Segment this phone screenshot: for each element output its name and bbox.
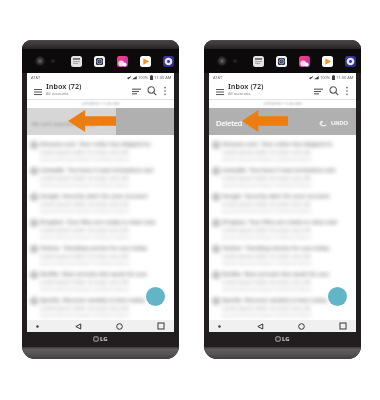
staticText: LG (100, 335, 108, 343)
staticText: 11:00 AM (154, 75, 172, 80)
staticText: UPDATED 11:46 AM (81, 101, 120, 107)
button[interactable]: Netflix New arrivals this week for you (209, 265, 356, 291)
button[interactable]: Search (145, 84, 159, 98)
button[interactable]: Pinterest Ideas we picked just for you (27, 317, 174, 332)
staticText: Netflix New arrivals this week for you (40, 270, 147, 278)
button[interactable]: Spotify Discover weekly is here today (27, 291, 174, 317)
button[interactable]: Amazon.com Your order has shipped to (27, 135, 174, 161)
button[interactable]: Recent apps (155, 320, 167, 332)
staticText: Dropbox Your files are ready to view now (222, 218, 338, 226)
staticText: Google Security alert for your account (222, 192, 330, 200)
button[interactable]: Home (113, 320, 125, 332)
staticText: Lorem ipsum dolor sit amet cons elit (40, 330, 129, 337)
button[interactable]: Back (254, 320, 266, 332)
staticText: Netflix New arrivals this week for you (222, 270, 329, 278)
button[interactable]: Navigation menu (213, 85, 226, 98)
staticText: Twitter Trending stories for you today (40, 244, 148, 252)
staticText: Spotify Discover weekly is here today (40, 296, 146, 304)
button[interactable]: Navigation menu (31, 85, 44, 98)
button[interactable]: Twitter Trending stories for you today (27, 239, 174, 265)
button[interactable]: More options (159, 85, 171, 97)
button[interactable]: Twitter Trending stories for you today (209, 239, 356, 265)
button[interactable]: Compose message (328, 287, 347, 306)
button[interactable]: Google Security alert for your account (209, 187, 356, 213)
button[interactable]: Back (72, 320, 84, 332)
button[interactable]: Notifications (32, 321, 42, 331)
staticText: We can't read this email yet (32, 121, 97, 128)
staticText: AT&T (213, 75, 223, 80)
staticText: Pinterest Ideas we picked just for you (222, 322, 329, 330)
staticText: 11:00 AM (336, 75, 354, 80)
staticText: Amazon.com Your order has shipped to (40, 140, 151, 148)
staticText: Inbox (72) (46, 81, 82, 91)
button[interactable]: Notifications (214, 321, 224, 331)
button[interactable]: Dropbox Your files are ready to view now (27, 213, 174, 239)
staticText: 100% (138, 75, 149, 80)
button[interactable]: Netflix New arrivals this week for you (27, 265, 174, 291)
button[interactable]: Dropbox Your files are ready to view now (209, 213, 356, 239)
button[interactable]: Amazon.com Your order has shipped to (209, 135, 356, 161)
button[interactable]: Search (327, 84, 341, 98)
staticText: 100% (320, 75, 331, 80)
button[interactable]: LinkedIn You have 4 new invitations wai (27, 161, 174, 187)
staticText: Inbox (72) (228, 81, 264, 91)
button[interactable]: Recent apps (337, 320, 349, 332)
staticText: LinkedIn You have 4 new invitations wai (222, 166, 336, 174)
staticText: All accounts (228, 91, 251, 96)
staticText: Spotify Discover weekly is here today (222, 296, 328, 304)
button[interactable]: Sort (129, 84, 143, 98)
button[interactable]: LinkedIn You have 4 new invitations wai (209, 161, 356, 187)
button[interactable]: Compose message (146, 287, 165, 306)
staticText: UNDO (331, 119, 348, 127)
staticText: Google Security alert for your account (40, 192, 148, 200)
staticText: Dropbox Your files are ready to view now (40, 218, 156, 226)
staticText: LinkedIn You have 4 new invitations wai (40, 166, 154, 174)
staticText: AT&T (31, 75, 41, 80)
staticText: Lorem ipsum dolor sit amet cons elit (222, 330, 311, 337)
staticText: Amazon.com Your order has shipped to (222, 140, 333, 148)
staticText: Twitter Trending stories for you today (222, 244, 330, 252)
button[interactable]: Google Security alert for your account (27, 187, 174, 213)
staticText: Pinterest Ideas we picked just for you (40, 322, 147, 330)
button[interactable]: Spotify Discover weekly is here today (209, 291, 356, 317)
staticText: LG (282, 335, 290, 343)
button[interactable]: Sort (311, 84, 325, 98)
staticText: Deleted (216, 118, 243, 128)
button[interactable]: More options (341, 85, 353, 97)
button[interactable]: Pinterest Ideas we picked just for you (209, 317, 356, 332)
button[interactable]: Home (295, 320, 307, 332)
staticText: All accounts (46, 91, 69, 96)
staticText: UPDATED 11:46 AM (263, 101, 302, 107)
